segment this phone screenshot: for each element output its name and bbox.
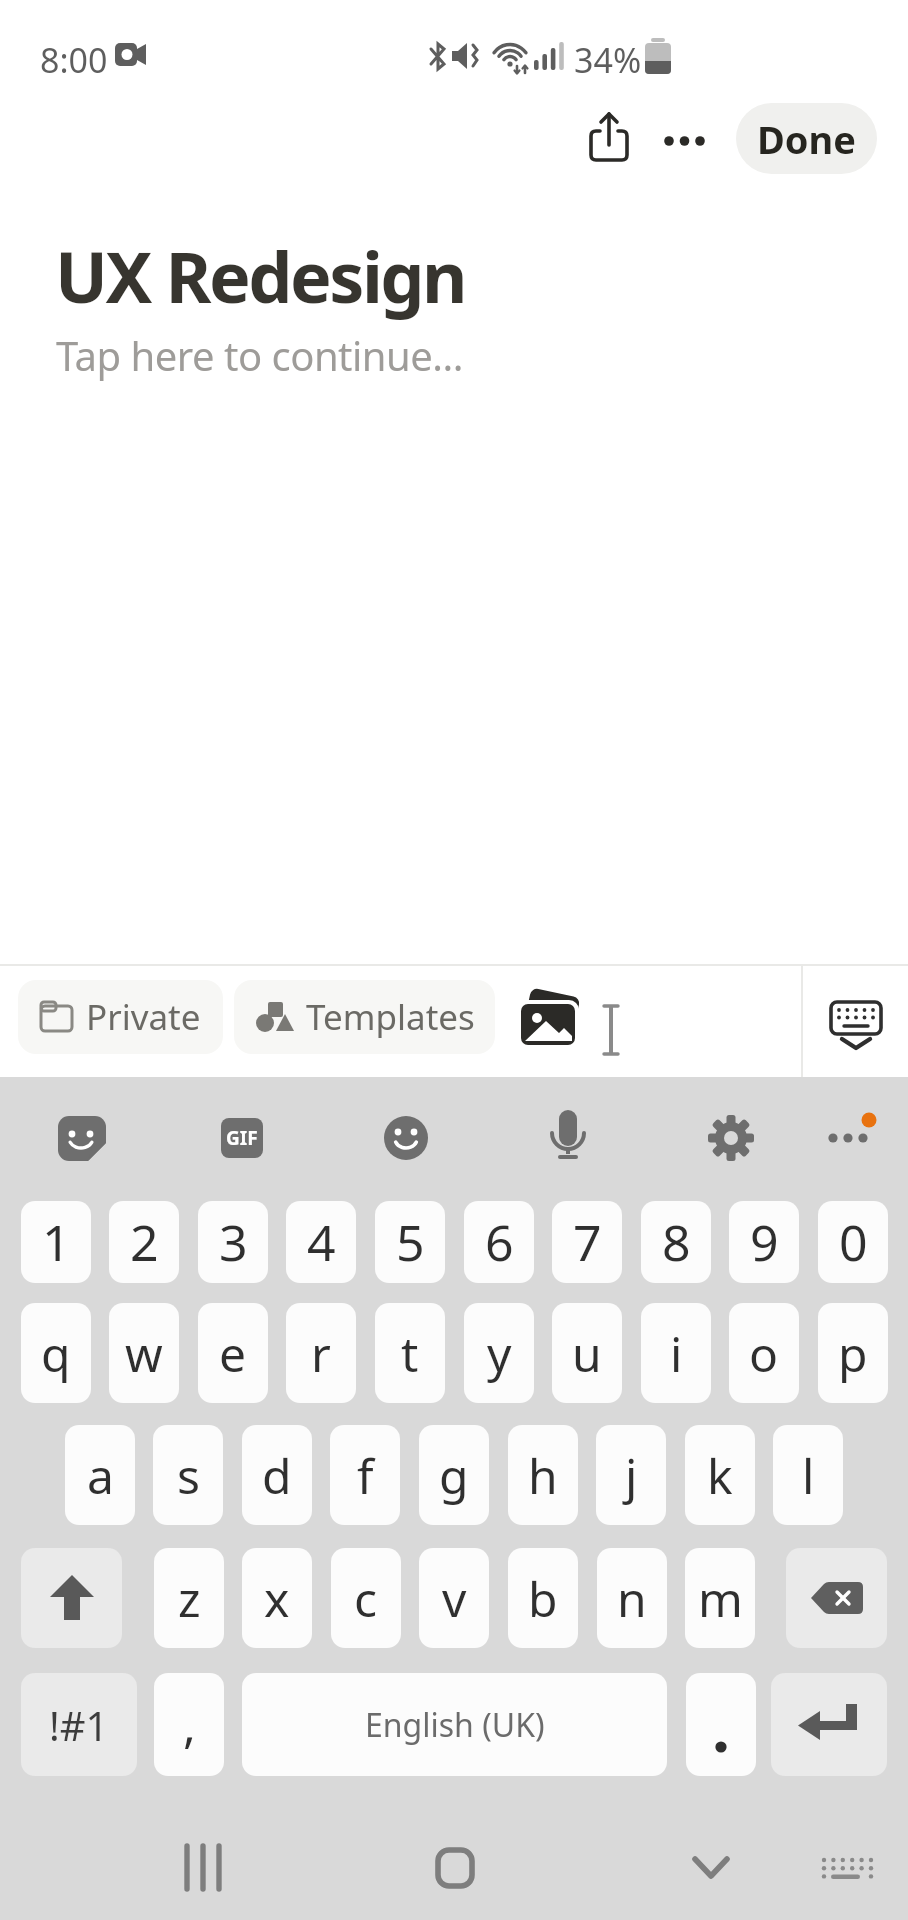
staticText: Done xyxy=(757,113,856,165)
button[interactable] xyxy=(655,115,715,165)
button[interactable]: 6 xyxy=(464,1201,534,1283)
button[interactable]: u xyxy=(552,1303,622,1403)
staticText: e xyxy=(219,1321,247,1386)
staticText: t xyxy=(401,1321,419,1386)
button[interactable]: p xyxy=(818,1303,888,1403)
button[interactable]: n xyxy=(597,1548,667,1648)
button[interactable]: English (UK) xyxy=(242,1673,667,1776)
button[interactable]: c xyxy=(331,1548,401,1648)
button[interactable]: GIF xyxy=(221,1118,263,1158)
staticText: c xyxy=(354,1566,378,1631)
button[interactable] xyxy=(820,990,892,1060)
button[interactable]: !#1 xyxy=(21,1673,137,1776)
button[interactable] xyxy=(21,1548,122,1648)
staticText: z xyxy=(178,1566,201,1631)
staticText: 6 xyxy=(485,1208,514,1276)
button[interactable]: v xyxy=(419,1548,489,1648)
staticText: n xyxy=(617,1566,647,1631)
staticText: 8 xyxy=(662,1208,691,1276)
button[interactable]: z xyxy=(154,1548,224,1648)
staticText: l xyxy=(802,1443,815,1508)
staticText: y xyxy=(487,1321,512,1386)
staticText: GIF xyxy=(226,1125,258,1151)
button[interactable] xyxy=(771,1673,887,1776)
button[interactable]: 0 xyxy=(818,1201,888,1283)
staticText: j xyxy=(625,1443,638,1508)
staticText: 4 xyxy=(307,1208,336,1276)
button[interactable] xyxy=(52,1108,112,1168)
button[interactable]: r xyxy=(286,1303,356,1403)
button[interactable]: f xyxy=(330,1425,400,1525)
button[interactable]: , xyxy=(154,1673,224,1776)
staticText: 8:00 xyxy=(40,37,108,83)
button[interactable]: 2 xyxy=(109,1201,179,1283)
staticText: p xyxy=(838,1321,868,1386)
button[interactable] xyxy=(412,1838,498,1898)
button[interactable]: o xyxy=(729,1303,799,1403)
button[interactable] xyxy=(512,988,588,1054)
button[interactable]: Templates xyxy=(234,980,495,1054)
button[interactable] xyxy=(686,1673,756,1776)
button[interactable]: h xyxy=(508,1425,578,1525)
button[interactable]: d xyxy=(242,1425,312,1525)
button[interactable] xyxy=(815,1840,881,1896)
staticText: a xyxy=(87,1443,114,1508)
staticText: 3 xyxy=(219,1208,248,1276)
button[interactable] xyxy=(160,1838,246,1898)
button[interactable]: Private xyxy=(18,980,223,1054)
staticText: u xyxy=(572,1321,602,1386)
button[interactable]: b xyxy=(508,1548,578,1648)
staticText: w xyxy=(125,1321,163,1386)
staticText: Templates xyxy=(306,993,475,1041)
button[interactable]: j xyxy=(596,1425,666,1525)
button[interactable]: 8 xyxy=(641,1201,711,1283)
button[interactable]: q xyxy=(21,1303,91,1403)
staticText: Private xyxy=(86,993,201,1041)
button[interactable]: 1 xyxy=(21,1201,91,1283)
staticText: 9 xyxy=(750,1208,779,1276)
staticText: b xyxy=(528,1566,558,1631)
button[interactable] xyxy=(538,1105,598,1167)
staticText: o xyxy=(749,1321,779,1386)
button[interactable]: l xyxy=(773,1425,843,1525)
button[interactable]: 3 xyxy=(198,1201,268,1283)
button[interactable]: x xyxy=(242,1548,312,1648)
button[interactable]: k xyxy=(685,1425,755,1525)
staticText: 2 xyxy=(130,1208,159,1276)
button[interactable]: s xyxy=(153,1425,223,1525)
staticText: v xyxy=(442,1566,467,1631)
staticText: q xyxy=(41,1321,71,1386)
button[interactable] xyxy=(580,105,640,171)
button[interactable]: 7 xyxy=(552,1201,622,1283)
button[interactable]: e xyxy=(198,1303,268,1403)
button[interactable]: 9 xyxy=(729,1201,799,1283)
button[interactable]: t xyxy=(375,1303,445,1403)
button[interactable] xyxy=(818,1100,888,1160)
staticText: x xyxy=(264,1566,290,1631)
button[interactable]: 4 xyxy=(286,1201,356,1283)
button[interactable]: m xyxy=(685,1548,755,1648)
staticText: English (UK) xyxy=(365,1703,545,1747)
staticText: , xyxy=(183,1692,196,1757)
button[interactable]: a xyxy=(65,1425,135,1525)
button[interactable]: 5 xyxy=(375,1201,445,1283)
button[interactable]: i xyxy=(641,1303,711,1403)
staticText: f xyxy=(357,1443,374,1508)
button[interactable] xyxy=(376,1108,436,1168)
button[interactable] xyxy=(668,1838,754,1898)
staticText: 0 xyxy=(839,1208,868,1276)
button[interactable]: Done xyxy=(736,103,877,174)
button[interactable] xyxy=(786,1548,887,1648)
staticText: 7 xyxy=(573,1208,602,1276)
button[interactable]: g xyxy=(419,1425,489,1525)
staticText: i xyxy=(670,1321,683,1386)
button[interactable]: y xyxy=(464,1303,534,1403)
staticText: 34% xyxy=(574,37,642,83)
button[interactable]: w xyxy=(109,1303,179,1403)
staticText: UX Redesign xyxy=(55,228,466,323)
button[interactable] xyxy=(701,1108,761,1168)
staticText: g xyxy=(439,1443,469,1508)
staticText: s xyxy=(177,1443,200,1508)
staticText: Tap here to continue... xyxy=(56,328,464,382)
staticText: m xyxy=(698,1566,743,1631)
